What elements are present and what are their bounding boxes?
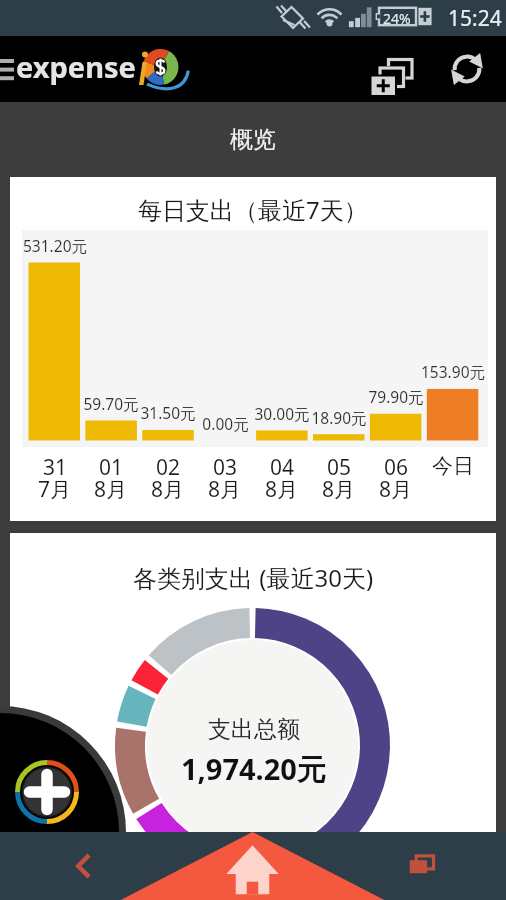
staticText: 每日支出（最近7天） — [138, 193, 368, 226]
staticText: 8月 — [322, 475, 356, 504]
button[interactable]: Back — [0, 832, 168, 900]
staticText: 1,974.20元 — [181, 749, 326, 789]
staticText: 8月 — [265, 475, 299, 504]
staticText: 24% — [383, 9, 411, 28]
staticText: 7月 — [38, 475, 72, 504]
staticText: 79.90元 — [368, 386, 424, 407]
staticText: 531.20元 — [23, 235, 87, 256]
button[interactable]: New — [363, 43, 415, 95]
staticText: 18.90元 — [311, 407, 367, 428]
staticText: 153.90元 — [421, 361, 485, 382]
staticText: 各类别支出 (最近30天) — [133, 561, 374, 594]
staticText: 今日 — [432, 453, 474, 479]
staticText: 59.70元 — [83, 393, 139, 414]
staticText: expense — [16, 47, 136, 86]
staticText: 05 — [327, 453, 352, 482]
staticText: 8月 — [94, 475, 128, 504]
button[interactable]: Recent apps — [337, 832, 506, 900]
staticText: 31 — [43, 453, 68, 482]
staticText: 01 — [99, 453, 124, 482]
staticText: 03 — [213, 453, 238, 482]
staticText: 8月 — [208, 475, 242, 504]
staticText: 06 — [384, 453, 409, 482]
staticText: 0.00元 — [202, 413, 249, 434]
staticText: 02 — [156, 453, 181, 482]
staticText: 31.50元 — [140, 402, 196, 423]
staticText: 04 — [270, 453, 295, 482]
staticText: 30.00元 — [254, 403, 310, 424]
button[interactable]: Add expense — [15, 760, 79, 824]
staticText: 15:24 — [448, 4, 502, 33]
staticText: 支出总额 — [208, 715, 300, 744]
staticText: 8月 — [379, 475, 413, 504]
button[interactable]: Home — [168, 832, 337, 900]
staticText: 概览 — [230, 125, 276, 154]
button[interactable]: Refresh — [443, 45, 491, 93]
staticText: 8月 — [151, 475, 185, 504]
button[interactable]: Menu — [0, 57, 14, 81]
